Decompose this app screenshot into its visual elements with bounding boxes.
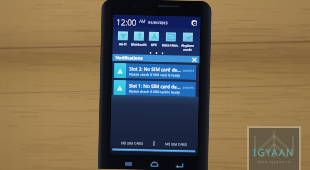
button[interactable]: Settings	[191, 20, 197, 26]
staticText: 01/01/13	[183, 69, 194, 73]
button[interactable]: Back	[172, 159, 186, 170]
button[interactable]: Recent apps	[121, 158, 135, 169]
staticText: Slot 1: No SIM card de...	[129, 82, 181, 90]
staticText: 12:00	[116, 16, 137, 28]
staticText: Please check if SIM card is ready	[129, 89, 181, 95]
staticText: IGYAAN	[253, 146, 295, 159]
staticText: Notifications	[115, 55, 143, 62]
staticText: Slot 2: No SIM card de...	[129, 65, 181, 73]
button[interactable]: Home	[147, 159, 161, 169]
button[interactable]: Airplane mode	[181, 33, 195, 52]
staticText: Bluetooth	[131, 42, 147, 47]
button[interactable]: Data conn.	[162, 32, 179, 47]
staticText: 01/01/2013	[148, 20, 168, 25]
staticText: Airplane mode	[181, 44, 195, 52]
button[interactable]: Wi-Fi	[118, 31, 128, 46]
button[interactable]: GPS	[149, 32, 159, 47]
button[interactable]: Slot 2: No SIM card de...	[114, 63, 196, 80]
staticText: NO SIM CARD	[110, 140, 153, 146]
staticText: 01/01/13	[183, 86, 194, 90]
staticText: NO SIM CARD	[154, 141, 197, 147]
staticText: Wi-Fi	[119, 42, 127, 46]
button[interactable]: Slot 1: No SIM card de...	[114, 80, 196, 97]
staticText: Please check if SIM card is ready	[129, 72, 181, 78]
button[interactable]: Bluetooth	[131, 31, 147, 47]
button[interactable]: Clear all notifications	[190, 56, 197, 63]
staticText: w w w . i g y a a n . i n	[258, 160, 290, 164]
staticText: Data conn.	[162, 43, 179, 47]
staticText: AM	[139, 19, 146, 25]
staticText: GPS	[151, 43, 157, 47]
